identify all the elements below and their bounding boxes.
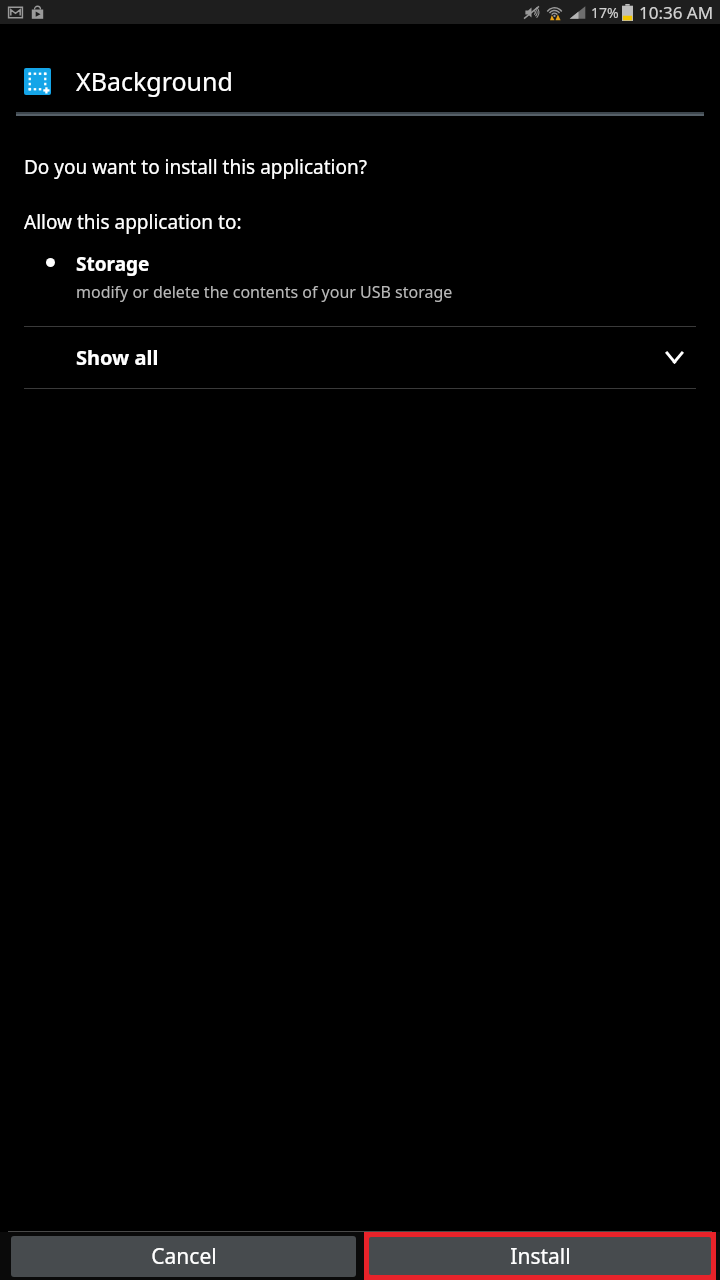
staticText: 10:36 AM	[639, 1, 714, 24]
button[interactable]: Install	[369, 1237, 711, 1275]
staticText: Install	[510, 1242, 571, 1271]
staticText: Show all	[76, 344, 159, 371]
staticText: 17%	[591, 3, 619, 22]
staticText: Cancel	[151, 1242, 217, 1271]
button[interactable]: Cancel	[11, 1236, 356, 1277]
staticText: Storage	[76, 251, 150, 277]
staticText: XBackground	[76, 64, 233, 98]
staticText: modify or delete the contents of your US…	[76, 281, 453, 303]
staticText: Do you want to install this application?	[24, 154, 368, 180]
staticText: Allow this application to:	[24, 209, 242, 235]
button[interactable]: Show all	[0, 327, 720, 388]
